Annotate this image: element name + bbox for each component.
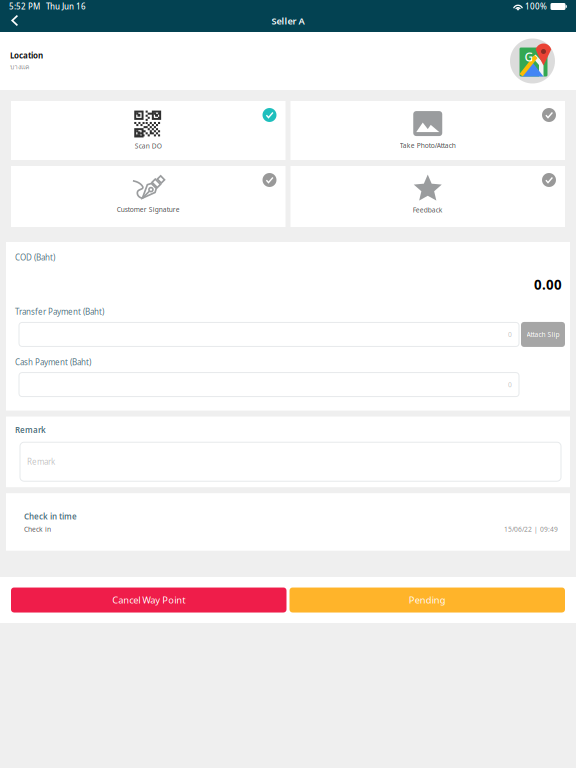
staticText: Cash Payment (Baht) (15, 357, 91, 368)
staticText: 0 (508, 380, 512, 389)
staticText: COD (Baht) (15, 252, 55, 263)
staticText: Cancel Way Point (112, 594, 185, 606)
staticText: Check in (24, 525, 51, 534)
staticText: 0 (508, 330, 512, 339)
button[interactable]: Pending (289, 587, 565, 612)
button[interactable]: Open in Maps (510, 38, 555, 83)
staticText: Location (10, 50, 43, 61)
button[interactable]: Customer Signature (11, 166, 285, 227)
staticText: 5:52 PM (9, 1, 40, 12)
staticText: Remark (27, 456, 55, 467)
staticText: G (524, 49, 533, 65)
staticText: Check in time (24, 511, 77, 522)
button[interactable]: Take Photo/Attach (290, 101, 565, 160)
button[interactable]: Back (0, 11, 30, 30)
staticText: 100% (525, 1, 547, 12)
staticText: บางแค (10, 62, 29, 72)
button[interactable]: Scan DO (11, 101, 285, 160)
button[interactable]: Attach Slip (521, 322, 565, 347)
staticText: 15/06/22 | 09:49 (504, 525, 558, 534)
button[interactable]: Cancel Way Point (11, 587, 286, 612)
staticText: Attach Slip (526, 330, 559, 339)
staticText: Seller A (271, 15, 304, 27)
staticText: Thu Jun 16 (40, 1, 86, 12)
staticText: Customer Signature (117, 205, 180, 214)
staticText: 0.00 (534, 276, 562, 293)
button[interactable]: Feedback (290, 166, 565, 227)
staticText: Transfer Payment (Baht) (15, 306, 104, 317)
staticText: Feedback (413, 206, 443, 214)
staticText: Pending (409, 594, 446, 606)
staticText: Take Photo/Attach (400, 141, 456, 150)
staticText: Scan DO (135, 142, 162, 150)
staticText: Remark (15, 425, 46, 435)
